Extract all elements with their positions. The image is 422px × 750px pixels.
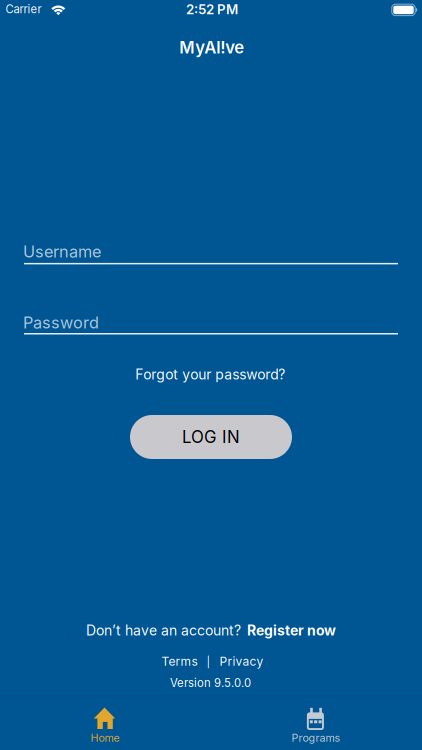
staticText: Home — [90, 731, 119, 744]
staticText: Don’t have an account? — [86, 622, 241, 639]
staticText: Register now — [247, 622, 336, 639]
staticText: Username — [23, 242, 101, 261]
staticText: Version 9.5.0.0 — [170, 676, 251, 690]
staticText: | — [206, 655, 210, 668]
staticText: Privacy — [219, 654, 263, 669]
staticText: LOG IN — [182, 427, 240, 447]
staticText: Password — [23, 313, 99, 332]
staticText: 2:52 PM — [186, 1, 238, 17]
staticText: Programs — [291, 731, 340, 744]
staticText: Forgot your password? — [135, 366, 285, 383]
staticText: Carrier — [5, 3, 41, 16]
staticText: MyAl!ve — [179, 38, 244, 57]
staticText: Terms — [161, 654, 197, 669]
